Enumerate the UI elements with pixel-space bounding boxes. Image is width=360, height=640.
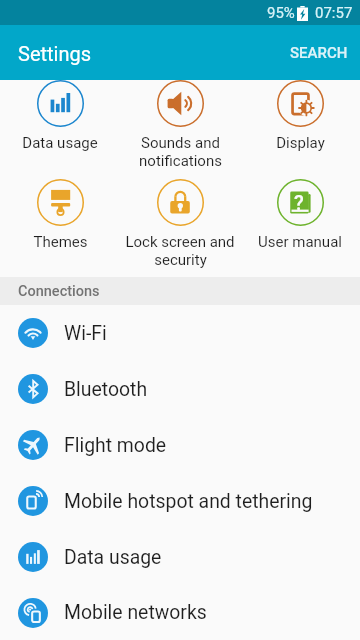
staticText: Data usage — [22, 134, 98, 152]
button[interactable]: Flight mode — [0, 417, 360, 473]
staticText: Data usage — [64, 546, 162, 569]
staticText: ? — [294, 191, 304, 214]
staticText: 07:57 — [315, 4, 353, 22]
button[interactable]: Data usage — [0, 80, 120, 179]
button[interactable]: Mobile networks — [0, 585, 360, 640]
button[interactable]: Sounds and — [120, 80, 240, 179]
button[interactable]: Themes — [0, 179, 120, 278]
button[interactable]: Mobile hotspot and tethering — [0, 473, 360, 529]
button[interactable]: ? — [240, 179, 360, 278]
staticText: Connections — [18, 283, 100, 300]
staticText: Sounds and — [141, 134, 220, 152]
staticText: 95% — [267, 4, 295, 22]
staticText: Mobile hotspot and tethering — [64, 490, 313, 513]
staticText: notifications — [139, 152, 222, 170]
staticText: Mobile networks — [64, 601, 207, 624]
staticText: Flight mode — [64, 434, 167, 457]
staticText: Wi-Fi — [64, 322, 107, 345]
staticText: Themes — [33, 233, 88, 251]
button[interactable]: Bluetooth — [0, 361, 360, 417]
staticText: Settings — [18, 42, 92, 65]
staticText: Lock screen and — [125, 233, 235, 251]
button[interactable]: Lock screen and — [120, 179, 240, 278]
button[interactable]: Data usage — [0, 529, 360, 585]
button[interactable]: SEARCH — [274, 32, 360, 74]
staticText: security — [154, 251, 207, 269]
staticText: Display — [276, 134, 325, 152]
button[interactable]: Display — [240, 80, 360, 179]
staticText: User manual — [258, 233, 342, 251]
staticText: Bluetooth — [64, 378, 148, 401]
button[interactable]: Wi-Fi — [0, 305, 360, 361]
staticText: SEARCH — [290, 44, 348, 62]
